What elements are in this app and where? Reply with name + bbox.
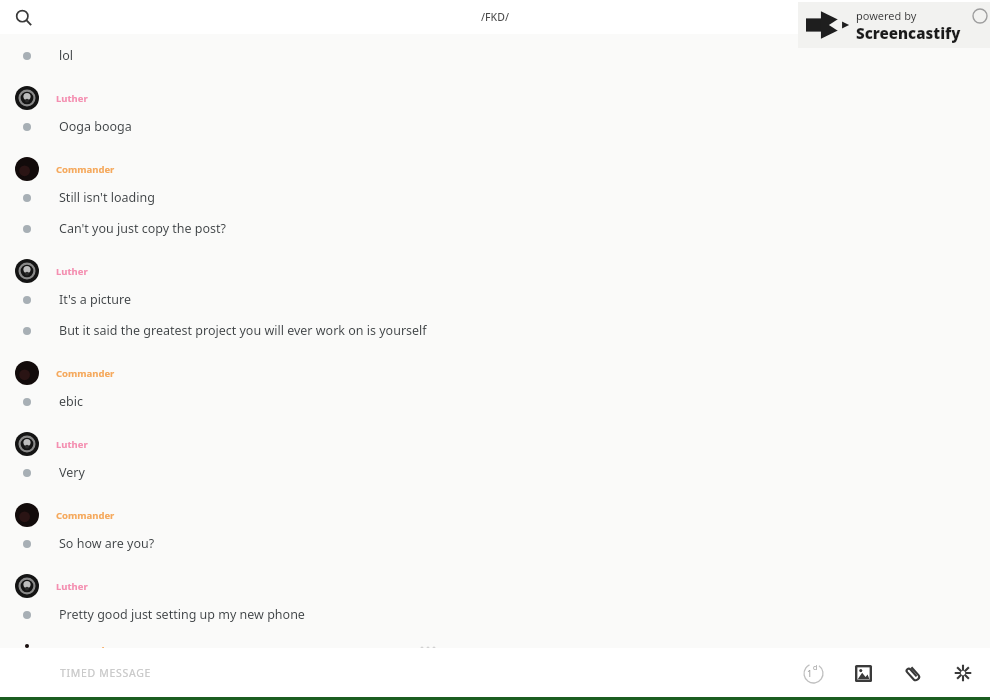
staticText: Luther (56, 92, 88, 105)
button[interactable]: Attach file (894, 654, 932, 692)
button[interactable]: Commander (0, 156, 990, 213)
button[interactable]: Can't you just copy the post? (0, 213, 990, 244)
staticText: Luther (56, 265, 88, 278)
staticText: It's a picture (59, 291, 132, 308)
staticText: So how are you? (59, 535, 155, 552)
button[interactable]: But it said the greatest project you wil… (0, 315, 990, 346)
staticText: Commander (56, 367, 115, 380)
staticText: /FKD/ (481, 10, 509, 24)
button[interactable]: TIMED MESSAGE (60, 666, 152, 680)
button[interactable]: Luther (0, 431, 990, 488)
button[interactable]: Commander (0, 502, 990, 559)
staticText: Commander (56, 509, 115, 522)
staticText: Commander (56, 163, 115, 176)
staticText: d (813, 663, 818, 673)
button[interactable]: Message timer (794, 654, 832, 692)
button[interactable]: Luther (0, 573, 990, 630)
staticText: lol (59, 47, 74, 64)
staticText: TIMED MESSAGE (60, 666, 152, 680)
button[interactable]: Search (8, 2, 38, 32)
button[interactable]: Luther (0, 85, 990, 142)
staticText: Still isn't loading (59, 189, 155, 206)
staticText: 1 (807, 667, 813, 679)
staticText: But it said the greatest project you wil… (59, 322, 427, 339)
button[interactable]: Send image (844, 654, 882, 692)
staticText: Luther (56, 438, 88, 451)
staticText: Ooga booga (59, 118, 132, 135)
button[interactable]: Luther (0, 258, 990, 315)
staticText: powered by (856, 8, 917, 23)
staticText: Can't you just copy the post? (59, 220, 227, 237)
staticText: Luther (56, 580, 88, 593)
staticText: Pretty good just setting up my new phone (59, 606, 305, 623)
button[interactable]: Commander (0, 644, 990, 648)
staticText: Very (59, 464, 85, 481)
button[interactable]: lol (0, 40, 990, 71)
staticText: ebic (59, 393, 83, 410)
staticText: Commander (56, 644, 115, 648)
staticText: Screencastify (856, 23, 961, 43)
button[interactable]: Commander (0, 360, 990, 417)
button[interactable]: Effects (944, 654, 982, 692)
